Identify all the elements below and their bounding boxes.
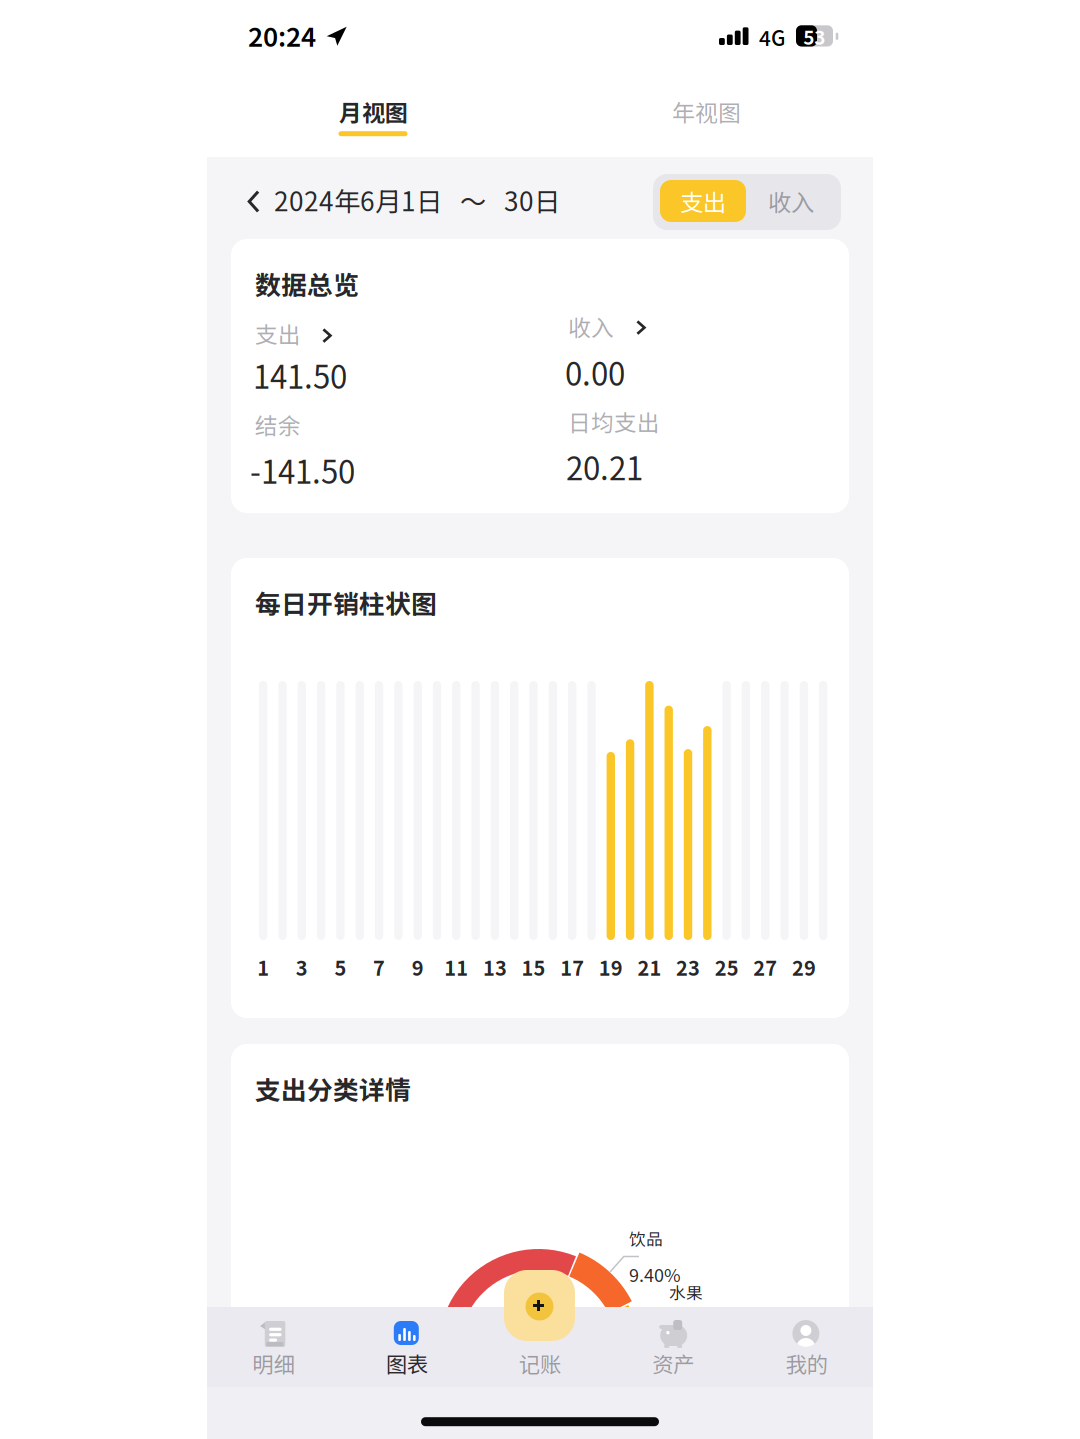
staticText: 结余 [255, 408, 301, 441]
staticText: 记账 [519, 1348, 561, 1379]
staticText: 7 [373, 952, 385, 981]
staticText: 25 [715, 952, 739, 981]
staticText: 2024年6月1日 ～ 30日 [274, 181, 560, 219]
button[interactable]: 2024年6月1日 ～ 30日 [246, 174, 586, 224]
staticText: -141.50 [250, 447, 355, 493]
staticText: 9.40% [629, 1261, 681, 1287]
staticText: 19 [599, 952, 623, 981]
staticText: 支出分类详情 [255, 1070, 411, 1107]
staticText: 3 [296, 952, 308, 981]
button[interactable]: 明细 [207, 1307, 340, 1387]
staticText: 53 [803, 23, 825, 50]
staticText: 20.21 [566, 444, 643, 489]
staticText: 0.00 [565, 349, 625, 395]
staticText: 15 [521, 952, 545, 981]
staticText: 4G [759, 22, 785, 52]
button[interactable]: 支出 [660, 180, 746, 222]
staticText: 收入 [568, 310, 614, 343]
staticText: 支出 [255, 317, 301, 350]
staticText: 图表 [386, 1348, 428, 1379]
button[interactable]: 收入 [748, 180, 834, 222]
button[interactable]: 年视图 [540, 73, 873, 153]
staticText: 数据总览 [255, 265, 359, 302]
staticText: 支出 [680, 184, 726, 218]
button[interactable]: 我的 [740, 1307, 873, 1387]
staticText: 资产 [652, 1348, 694, 1379]
button[interactable]: 记账 [473, 1307, 607, 1387]
staticText: 我的 [785, 1348, 827, 1379]
staticText: 27 [753, 952, 777, 981]
staticText: 141.50 [253, 352, 347, 398]
staticText: 17 [560, 952, 584, 981]
staticText: 日均支出 [568, 405, 660, 438]
button[interactable]: 资产 [607, 1307, 740, 1387]
staticText: 20:24 [248, 16, 316, 54]
staticText: 饮品 [629, 1226, 663, 1250]
staticText: 29 [792, 952, 816, 981]
staticText: 每日开销柱状图 [255, 584, 437, 621]
staticText: 明细 [253, 1348, 295, 1379]
staticText: 23 [676, 952, 700, 981]
staticText: 1 [257, 952, 269, 981]
staticText: 年视图 [672, 95, 741, 128]
staticText: 5 [334, 952, 346, 981]
button[interactable]: 记账 [504, 1270, 575, 1341]
staticText: 9 [412, 952, 424, 981]
staticText: 11 [444, 952, 468, 981]
button[interactable]: 图表 [340, 1307, 473, 1387]
staticText: 月视图 [339, 95, 408, 128]
staticText: 13 [483, 952, 507, 981]
staticText: 水果 [669, 1280, 703, 1304]
staticText: 收入 [768, 184, 814, 218]
button[interactable]: 月视图 [207, 73, 540, 153]
staticText: 21 [637, 952, 661, 981]
